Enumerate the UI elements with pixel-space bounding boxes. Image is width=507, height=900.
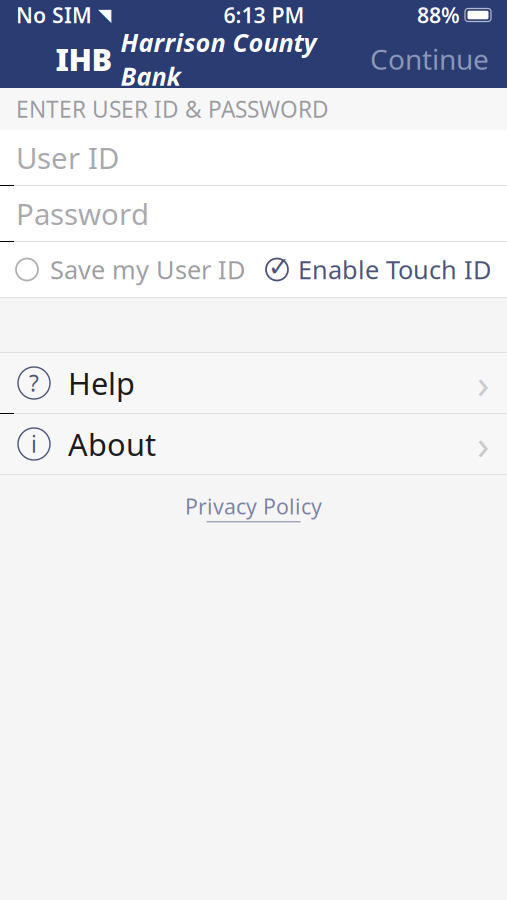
staticText: Harrison County Bank bbox=[120, 25, 316, 93]
staticText: 88% bbox=[417, 1, 460, 29]
button[interactable]: User ID bbox=[0, 130, 507, 185]
staticText: Privacy Policy bbox=[185, 492, 322, 520]
staticText: Enable Touch ID bbox=[298, 253, 491, 286]
staticText: 6:13 PM bbox=[223, 1, 304, 29]
staticText: No SIM bbox=[16, 1, 92, 29]
staticText: › bbox=[477, 356, 489, 409]
staticText: ✓ bbox=[268, 252, 290, 282]
staticText: IHB bbox=[55, 39, 112, 79]
button[interactable]: Password bbox=[0, 186, 507, 241]
staticText: › bbox=[477, 417, 489, 470]
staticText: Help bbox=[68, 363, 135, 403]
button[interactable]: ✓ bbox=[266, 243, 491, 296]
staticText: About bbox=[68, 424, 156, 464]
button[interactable]: ? bbox=[0, 353, 507, 413]
button[interactable]: Privacy Policy bbox=[165, 475, 342, 534]
staticText: ? bbox=[29, 368, 39, 398]
staticText: ENTER USER ID & PASSWORD bbox=[16, 94, 329, 124]
button[interactable]: Save my User ID bbox=[16, 243, 245, 296]
staticText: Password bbox=[16, 194, 149, 233]
button[interactable]: Continue bbox=[356, 32, 503, 86]
staticText: User ID bbox=[16, 138, 119, 177]
staticText: ◥ bbox=[98, 5, 111, 25]
button[interactable]: i bbox=[0, 414, 507, 474]
staticText: Save my User ID bbox=[50, 253, 245, 286]
staticText: Continue bbox=[370, 40, 489, 78]
staticText: i bbox=[31, 429, 37, 459]
